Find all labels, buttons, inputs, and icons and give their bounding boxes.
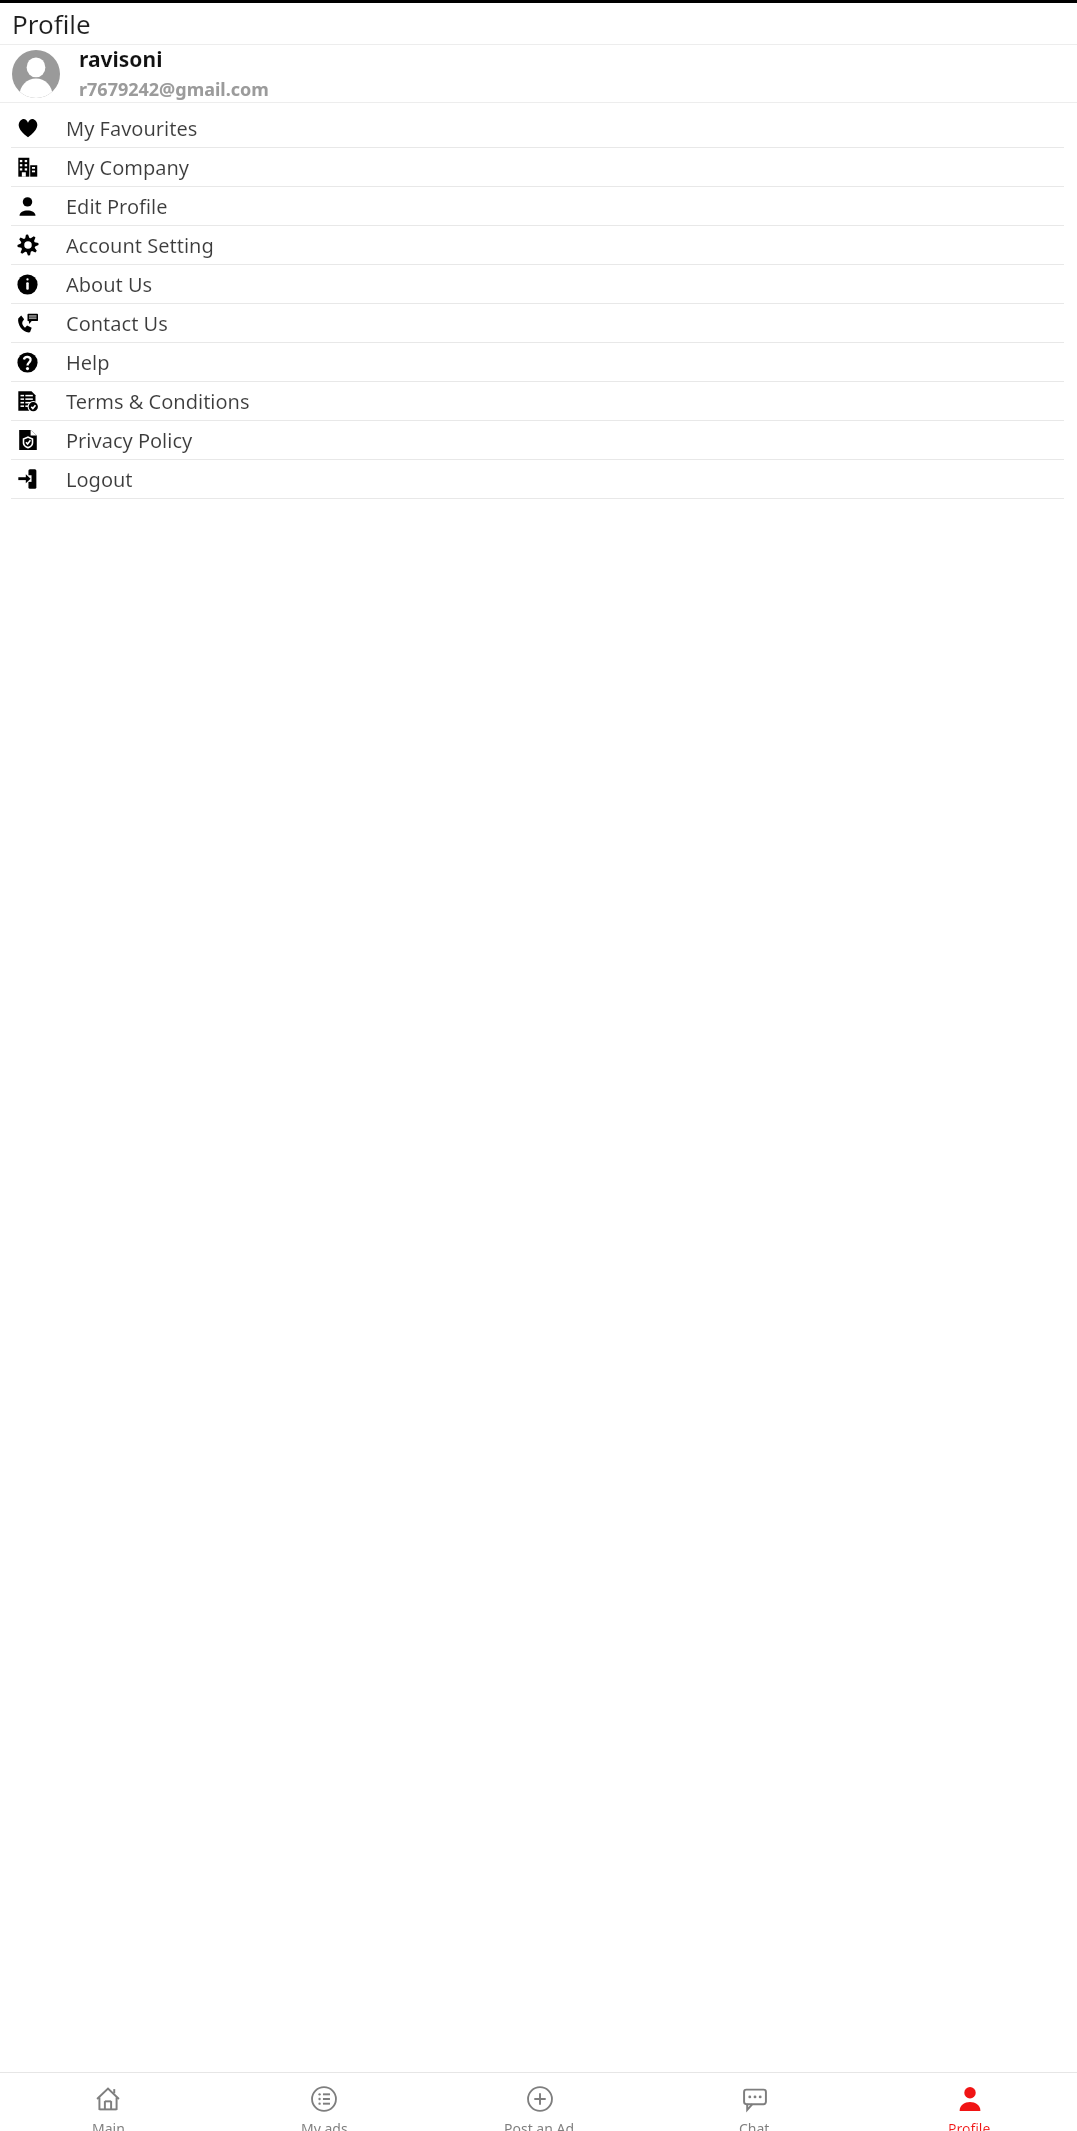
button[interactable]: My Favourites bbox=[0, 109, 1077, 147]
staticText: Account Setting bbox=[66, 232, 214, 259]
button[interactable]: ravisoni bbox=[0, 45, 1077, 102]
staticText: ravisoni bbox=[79, 45, 163, 74]
staticText: My ads bbox=[301, 2119, 348, 2131]
staticText: Profile bbox=[948, 2119, 991, 2131]
button[interactable]: My ads bbox=[216, 2073, 432, 2131]
staticText: My Favourites bbox=[66, 115, 198, 142]
button[interactable]: Help bbox=[0, 343, 1077, 381]
button[interactable]: Privacy Policy bbox=[0, 421, 1077, 459]
staticText: Main bbox=[92, 2119, 125, 2131]
button[interactable]: Edit Profile bbox=[0, 187, 1077, 225]
staticText: r7679242@gmail.com bbox=[79, 77, 269, 102]
button[interactable]: Contact Us bbox=[0, 304, 1077, 342]
staticText: Contact Us bbox=[66, 310, 168, 337]
staticText: Edit Profile bbox=[66, 193, 168, 220]
button[interactable]: Main bbox=[0, 2073, 216, 2131]
staticText: Post an Ad bbox=[504, 2119, 575, 2131]
button[interactable]: Profile bbox=[862, 2073, 1077, 2131]
button[interactable]: Account Setting bbox=[0, 226, 1077, 264]
staticText: Privacy Policy bbox=[66, 427, 193, 454]
staticText: Logout bbox=[66, 466, 133, 493]
staticText: About Us bbox=[66, 271, 153, 298]
button[interactable]: Logout bbox=[0, 460, 1077, 498]
button[interactable]: Chat bbox=[647, 2073, 862, 2131]
button[interactable]: About Us bbox=[0, 265, 1077, 303]
button[interactable]: Post an Ad bbox=[432, 2073, 647, 2131]
staticText: My Company bbox=[66, 154, 190, 181]
staticText: Profile bbox=[12, 6, 91, 41]
button[interactable]: My Company bbox=[0, 148, 1077, 186]
button[interactable]: Terms & Conditions bbox=[0, 382, 1077, 420]
staticText: Terms & Conditions bbox=[66, 388, 250, 415]
staticText: Help bbox=[66, 349, 110, 376]
staticText: Chat bbox=[739, 2119, 770, 2131]
